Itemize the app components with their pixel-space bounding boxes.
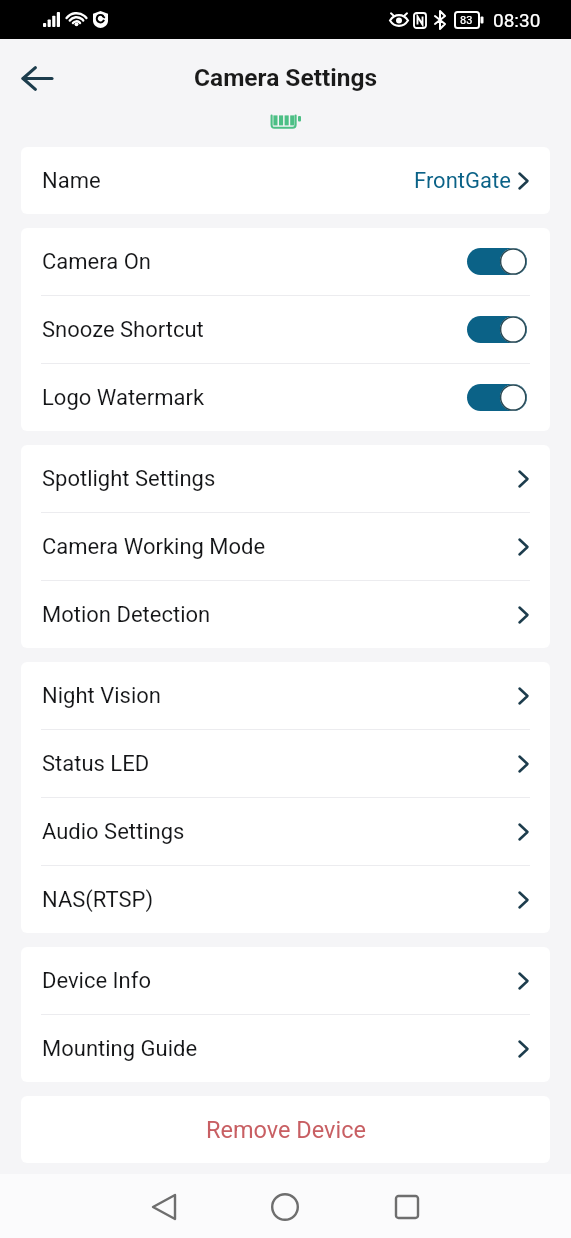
button[interactable]: NAS(RTSP) xyxy=(21,866,550,933)
staticText: Camera On xyxy=(42,249,151,275)
button[interactable]: Camera Working Mode xyxy=(21,513,550,580)
button[interactable]: Spotlight Settings xyxy=(21,445,550,512)
button[interactable]: Logo Watermark xyxy=(21,364,550,431)
staticText: Mounting Guide xyxy=(42,1036,198,1062)
button[interactable]: Camera On xyxy=(21,228,550,295)
button[interactable]: Back xyxy=(135,1187,193,1227)
button[interactable]: Name xyxy=(21,147,550,214)
staticText: NAS(RTSP) xyxy=(42,887,154,913)
staticText: Logo Watermark xyxy=(42,385,205,411)
staticText: Camera Working Mode xyxy=(42,534,266,560)
staticText: Audio Settings xyxy=(42,819,185,845)
button[interactable]: Toggle xyxy=(467,315,528,344)
staticText: Spotlight Settings xyxy=(42,466,216,492)
button[interactable]: Recents xyxy=(378,1187,436,1227)
button[interactable]: Home xyxy=(256,1187,314,1227)
staticText: Remove Device xyxy=(206,1116,366,1144)
button[interactable]: Snooze Shortcut xyxy=(21,296,550,363)
staticText: Night Vision xyxy=(42,683,161,709)
button[interactable]: Motion Detection xyxy=(21,581,550,648)
button[interactable]: Device Info xyxy=(21,947,550,1014)
button[interactable]: Night Vision xyxy=(21,662,550,729)
button[interactable]: Status LED xyxy=(21,730,550,797)
button[interactable]: Remove Device xyxy=(21,1096,550,1163)
staticText: FrontGate xyxy=(414,168,511,194)
button[interactable]: Back xyxy=(13,54,61,102)
button[interactable]: Audio Settings xyxy=(21,798,550,865)
staticText: Device Info xyxy=(42,968,151,994)
staticText: Motion Detection xyxy=(42,602,211,628)
staticText: 83 xyxy=(460,14,473,27)
staticText: Name xyxy=(42,168,101,194)
staticText: Camera Settings xyxy=(194,63,378,92)
button[interactable]: Toggle xyxy=(467,247,528,276)
staticText: Snooze Shortcut xyxy=(42,317,204,343)
staticText: Status LED xyxy=(42,751,150,777)
button[interactable]: Mounting Guide xyxy=(21,1015,550,1082)
button[interactable]: Toggle xyxy=(467,383,528,412)
staticText: 08:30 xyxy=(493,9,541,31)
